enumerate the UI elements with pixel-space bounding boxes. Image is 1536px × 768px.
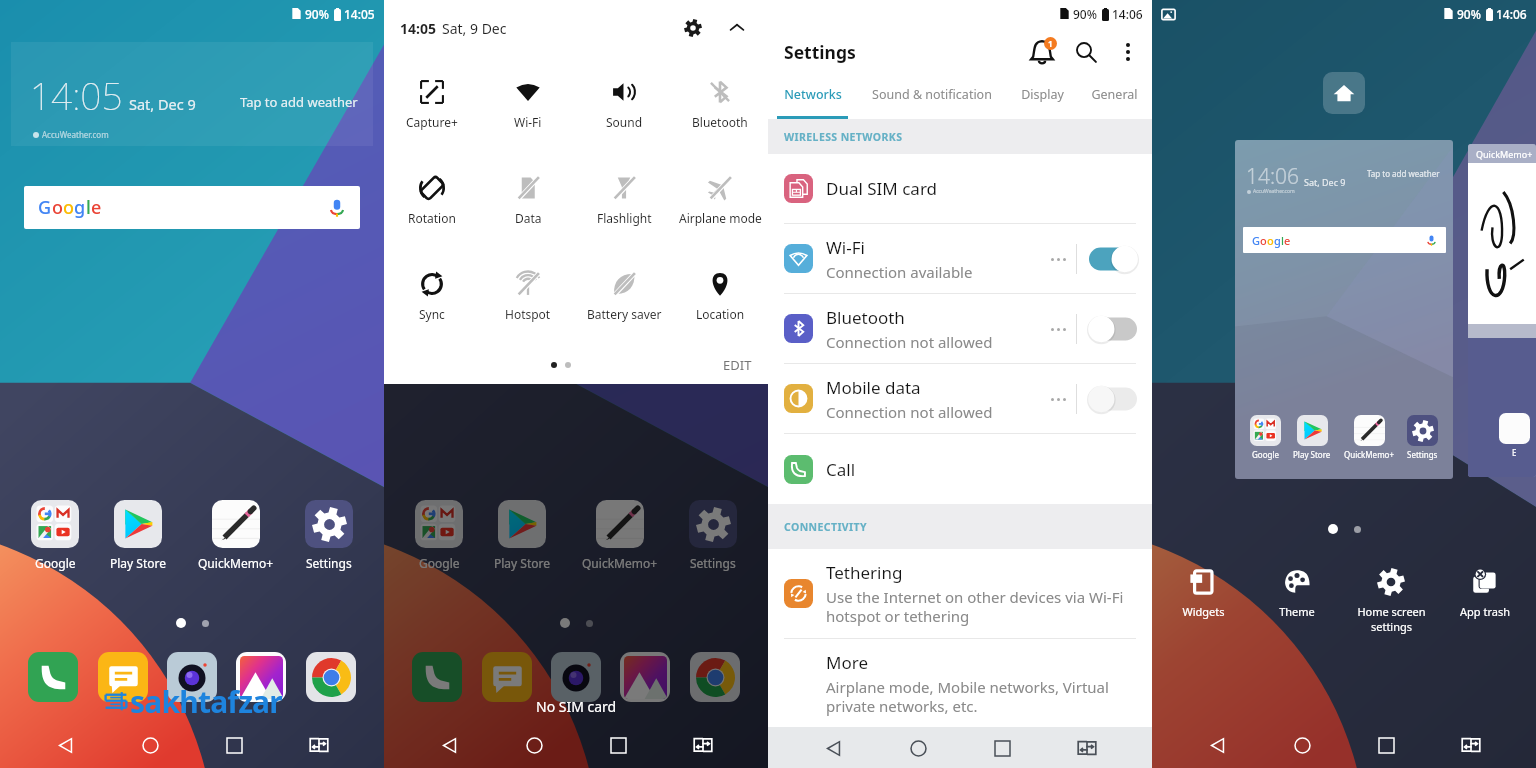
staticText: QuickMemo+ xyxy=(198,555,274,571)
staticText: WIRELESS NETWORKS xyxy=(784,130,903,144)
staticText: E xyxy=(1512,447,1517,458)
button[interactable]: Home xyxy=(131,726,169,764)
button[interactable]: Call xyxy=(768,434,1152,504)
button[interactable]: Recents xyxy=(1367,726,1405,764)
button[interactable]: Airplane mode xyxy=(672,175,768,226)
button[interactable]: Battery saver xyxy=(576,271,672,322)
button[interactable]: Gallery xyxy=(236,652,286,702)
button[interactable]: Google xyxy=(411,500,467,571)
button[interactable]: Back xyxy=(1198,726,1236,764)
button[interactable]: Back xyxy=(814,729,852,767)
staticText: Settings xyxy=(690,555,736,571)
button[interactable]: QuickMemo+ xyxy=(1344,415,1395,460)
button[interactable]: Flashlight xyxy=(576,175,672,226)
button[interactable]: General xyxy=(1077,75,1152,119)
button[interactable]: Chrome xyxy=(690,652,740,702)
button[interactable]: Google xyxy=(1250,415,1281,460)
button[interactable]: Play Store xyxy=(1293,415,1331,460)
button[interactable]: Notifications xyxy=(1024,34,1060,70)
button[interactable]: Recents xyxy=(983,729,1021,767)
button[interactable]: Sound xyxy=(576,79,672,130)
button[interactable]: Theme xyxy=(1254,568,1340,619)
button[interactable]: Home screen settings xyxy=(1348,568,1434,634)
button[interactable]: Toggle xyxy=(1088,385,1138,413)
staticText: No SIM card xyxy=(536,697,617,716)
button[interactable]: Bluetooth xyxy=(672,79,768,130)
button[interactable]: Settings xyxy=(685,500,741,571)
staticText: Mobile data xyxy=(826,376,921,399)
staticText: Display xyxy=(1021,86,1064,103)
button[interactable]: Back xyxy=(46,726,84,764)
button[interactable]: Google xyxy=(27,500,83,571)
button[interactable]: Messages xyxy=(98,652,148,702)
button[interactable]: Sound & notification xyxy=(857,75,1007,119)
staticText: 90% xyxy=(1073,6,1097,22)
button[interactable]: QuickMemo+ xyxy=(578,500,662,571)
button[interactable]: Settings xyxy=(678,13,708,43)
staticText: 14:05 xyxy=(30,70,123,120)
button[interactable]: Tethering xyxy=(768,549,1152,638)
button[interactable]: EDIT xyxy=(723,356,752,374)
button[interactable]: Messages xyxy=(482,652,532,702)
button[interactable]: Collapse xyxy=(722,13,752,43)
button[interactable]: Widgets xyxy=(1160,568,1246,619)
button[interactable]: 14:05 xyxy=(11,42,373,146)
button[interactable]: Settings xyxy=(301,500,357,571)
button[interactable]: Wi-Fi xyxy=(480,79,576,130)
button[interactable]: G xyxy=(24,186,360,229)
button[interactable]: App trash xyxy=(1442,568,1528,619)
button[interactable]: Hotspot xyxy=(480,271,576,322)
button[interactable]: Phone xyxy=(412,652,462,702)
staticText: Play Store xyxy=(494,555,550,571)
button[interactable]: Play Store xyxy=(490,500,554,571)
button[interactable]: Recents xyxy=(215,726,253,764)
button[interactable]: Mobile data xyxy=(768,364,1152,433)
button[interactable]: Camera xyxy=(167,652,217,702)
button[interactable]: Toggle xyxy=(1088,315,1138,343)
button[interactable]: Home xyxy=(1283,726,1321,764)
button[interactable]: Dual window xyxy=(300,726,338,764)
staticText: Wi-Fi xyxy=(514,114,542,130)
staticText: Play Store xyxy=(110,555,166,571)
staticText: Sat, Dec 9 xyxy=(129,94,196,114)
staticText: 90% xyxy=(1457,6,1481,22)
button[interactable]: Gallery xyxy=(620,652,670,702)
button[interactable]: Toggle xyxy=(1088,245,1138,273)
button[interactable]: Back xyxy=(430,726,468,764)
staticText: e xyxy=(1284,233,1291,248)
button[interactable]: Home xyxy=(899,729,937,767)
button[interactable]: Bluetooth xyxy=(768,294,1152,363)
button[interactable]: Search xyxy=(1068,34,1104,70)
staticText: Location xyxy=(696,306,745,322)
button[interactable]: Capture+ xyxy=(384,79,480,130)
button[interactable]: Wi-Fi xyxy=(768,224,1152,293)
button[interactable]: Location xyxy=(672,271,768,322)
button[interactable]: Dual SIM card xyxy=(768,154,1152,223)
button[interactable]: Chrome xyxy=(306,652,356,702)
staticText: Google xyxy=(419,555,460,571)
staticText: Call xyxy=(826,458,856,481)
button[interactable]: QuickMemo+ xyxy=(194,500,278,571)
button[interactable]: Display xyxy=(1007,75,1077,119)
button[interactable]: Home xyxy=(515,726,553,764)
button[interactable]: Sync xyxy=(384,271,480,322)
button[interactable]: Settings xyxy=(1407,415,1438,460)
button[interactable]: Dual window xyxy=(1068,729,1106,767)
button[interactable]: Play Store xyxy=(106,500,170,571)
button[interactable]: Dual window xyxy=(684,726,722,764)
staticText: G xyxy=(38,195,52,220)
button[interactable]: More xyxy=(768,639,1152,727)
button[interactable]: More options xyxy=(1110,34,1146,70)
button[interactable]: Home page xyxy=(1323,72,1365,114)
staticText: Tap to add weather xyxy=(240,93,358,111)
button[interactable]: Data xyxy=(480,175,576,226)
button[interactable]: Dual window xyxy=(1452,726,1490,764)
staticText: l xyxy=(86,195,91,220)
staticText: General xyxy=(1091,86,1138,103)
button[interactable]: Camera xyxy=(551,652,601,702)
button[interactable]: Networks xyxy=(768,75,857,119)
staticText: Airplane mode, Mobile networks, Virtual … xyxy=(826,677,1138,716)
button[interactable]: Phone xyxy=(28,652,78,702)
button[interactable]: Rotation xyxy=(384,175,480,226)
button[interactable]: Recents xyxy=(599,726,637,764)
